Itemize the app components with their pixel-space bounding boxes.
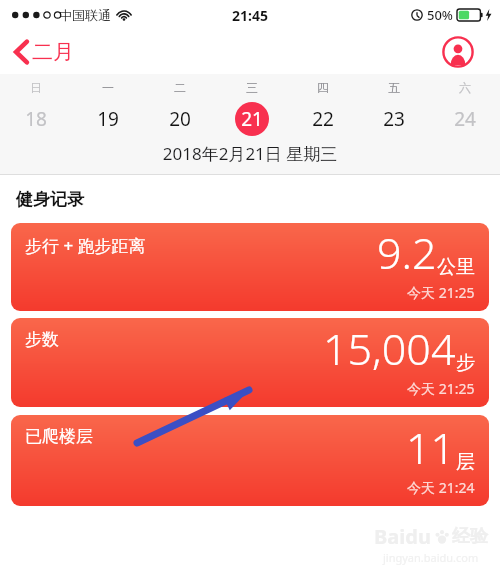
button[interactable]: 已爬楼层 (11, 415, 489, 506)
staticText: 50% (427, 6, 453, 24)
staticText: 24 (454, 106, 476, 132)
staticText: 步 (456, 351, 475, 375)
staticText: 健身记录 (16, 189, 84, 210)
staticText: 步数 (25, 329, 59, 350)
staticText: 已爬楼层 (25, 426, 93, 447)
button[interactable]: 22 (287, 101, 358, 137)
staticText: 9.2 (377, 223, 437, 282)
staticText: 层 (456, 450, 475, 474)
button[interactable]: 24 (429, 101, 500, 137)
staticText: 今天 21:24 (407, 478, 475, 497)
staticText: 今天 21:25 (407, 379, 475, 398)
staticText: Baidu (374, 523, 431, 550)
button[interactable]: 步行 + 跑步距离 (11, 223, 489, 311)
button[interactable]: 23 (358, 101, 429, 137)
button[interactable]: 21 (216, 101, 287, 137)
staticText: 公里 (437, 255, 475, 279)
staticText: 19 (97, 106, 119, 132)
staticText: 21 (241, 106, 263, 132)
staticText: 20 (169, 106, 191, 132)
staticText: 今天 21:25 (407, 283, 475, 302)
button[interactable]: 步数 (11, 318, 489, 407)
button[interactable]: 20 (144, 101, 216, 137)
staticText: 经验 (452, 525, 488, 548)
staticText: 15,004 (323, 319, 456, 378)
button[interactable]: 19 (72, 101, 144, 137)
staticText: 四 (317, 80, 329, 95)
staticText: 二 (174, 80, 186, 95)
staticText: 一 (102, 80, 114, 95)
staticText: jingyan.baidu.com (383, 550, 479, 565)
button[interactable]: 二月 (0, 33, 84, 71)
staticText: 2018年2月21日 星期三 (0, 142, 500, 165)
staticText: 六 (459, 80, 471, 95)
staticText: 18 (25, 106, 47, 132)
staticText: 三 (246, 80, 258, 95)
staticText: 21:45 (232, 6, 268, 25)
staticText: 步行 + 跑步距离 (25, 234, 146, 257)
staticText: 日 (30, 80, 42, 95)
staticText: 11 (406, 418, 456, 477)
staticText: 中国联通 (59, 7, 111, 23)
staticText: 二月 (32, 39, 74, 65)
button[interactable]: Profile (442, 36, 474, 68)
staticText: 23 (383, 106, 405, 132)
button[interactable]: 18 (0, 101, 72, 137)
staticText: 五 (388, 80, 400, 95)
staticText: 22 (312, 106, 334, 132)
